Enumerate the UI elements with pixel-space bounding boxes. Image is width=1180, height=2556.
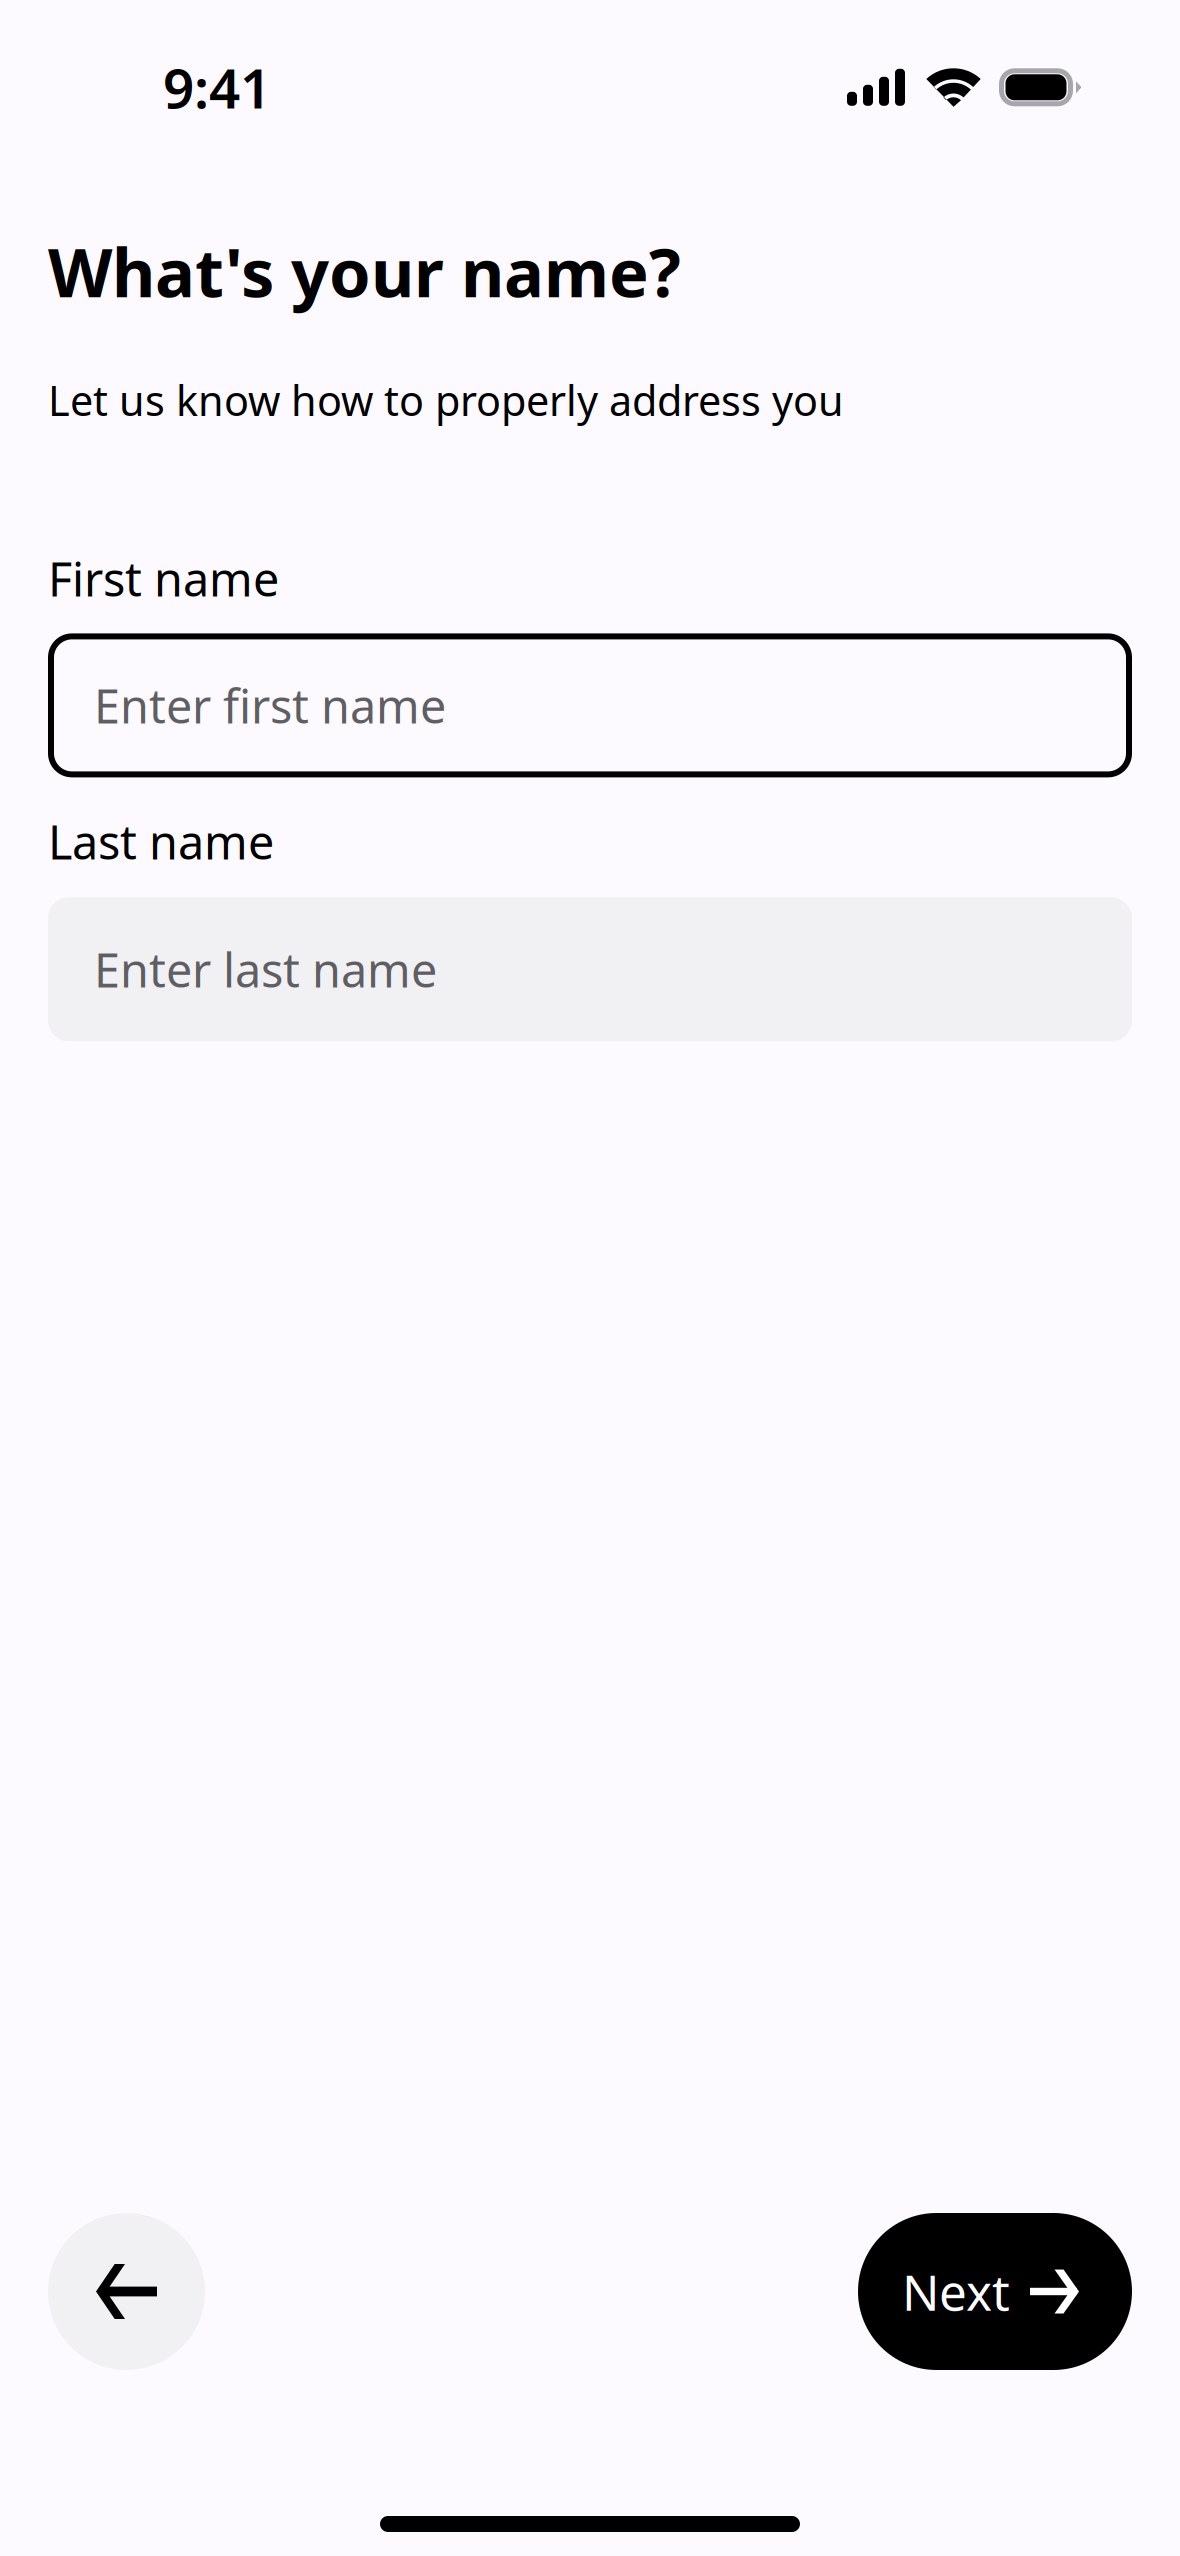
staticText: First name xyxy=(48,547,279,609)
button[interactable]: Enter last name xyxy=(48,897,1132,1041)
button[interactable]: Enter first name xyxy=(48,633,1132,777)
staticText: Last name xyxy=(48,810,274,872)
staticText: Enter last name xyxy=(94,938,437,1000)
button[interactable]: Back xyxy=(48,2213,205,2370)
button[interactable]: Next xyxy=(858,2213,1132,2370)
staticText: Let us know how to properly address you xyxy=(48,372,844,427)
staticText: Next xyxy=(902,2259,1010,2324)
staticText: 9:41 xyxy=(163,51,271,124)
staticText: Enter first name xyxy=(94,674,446,736)
staticText: What's your name? xyxy=(48,227,681,315)
